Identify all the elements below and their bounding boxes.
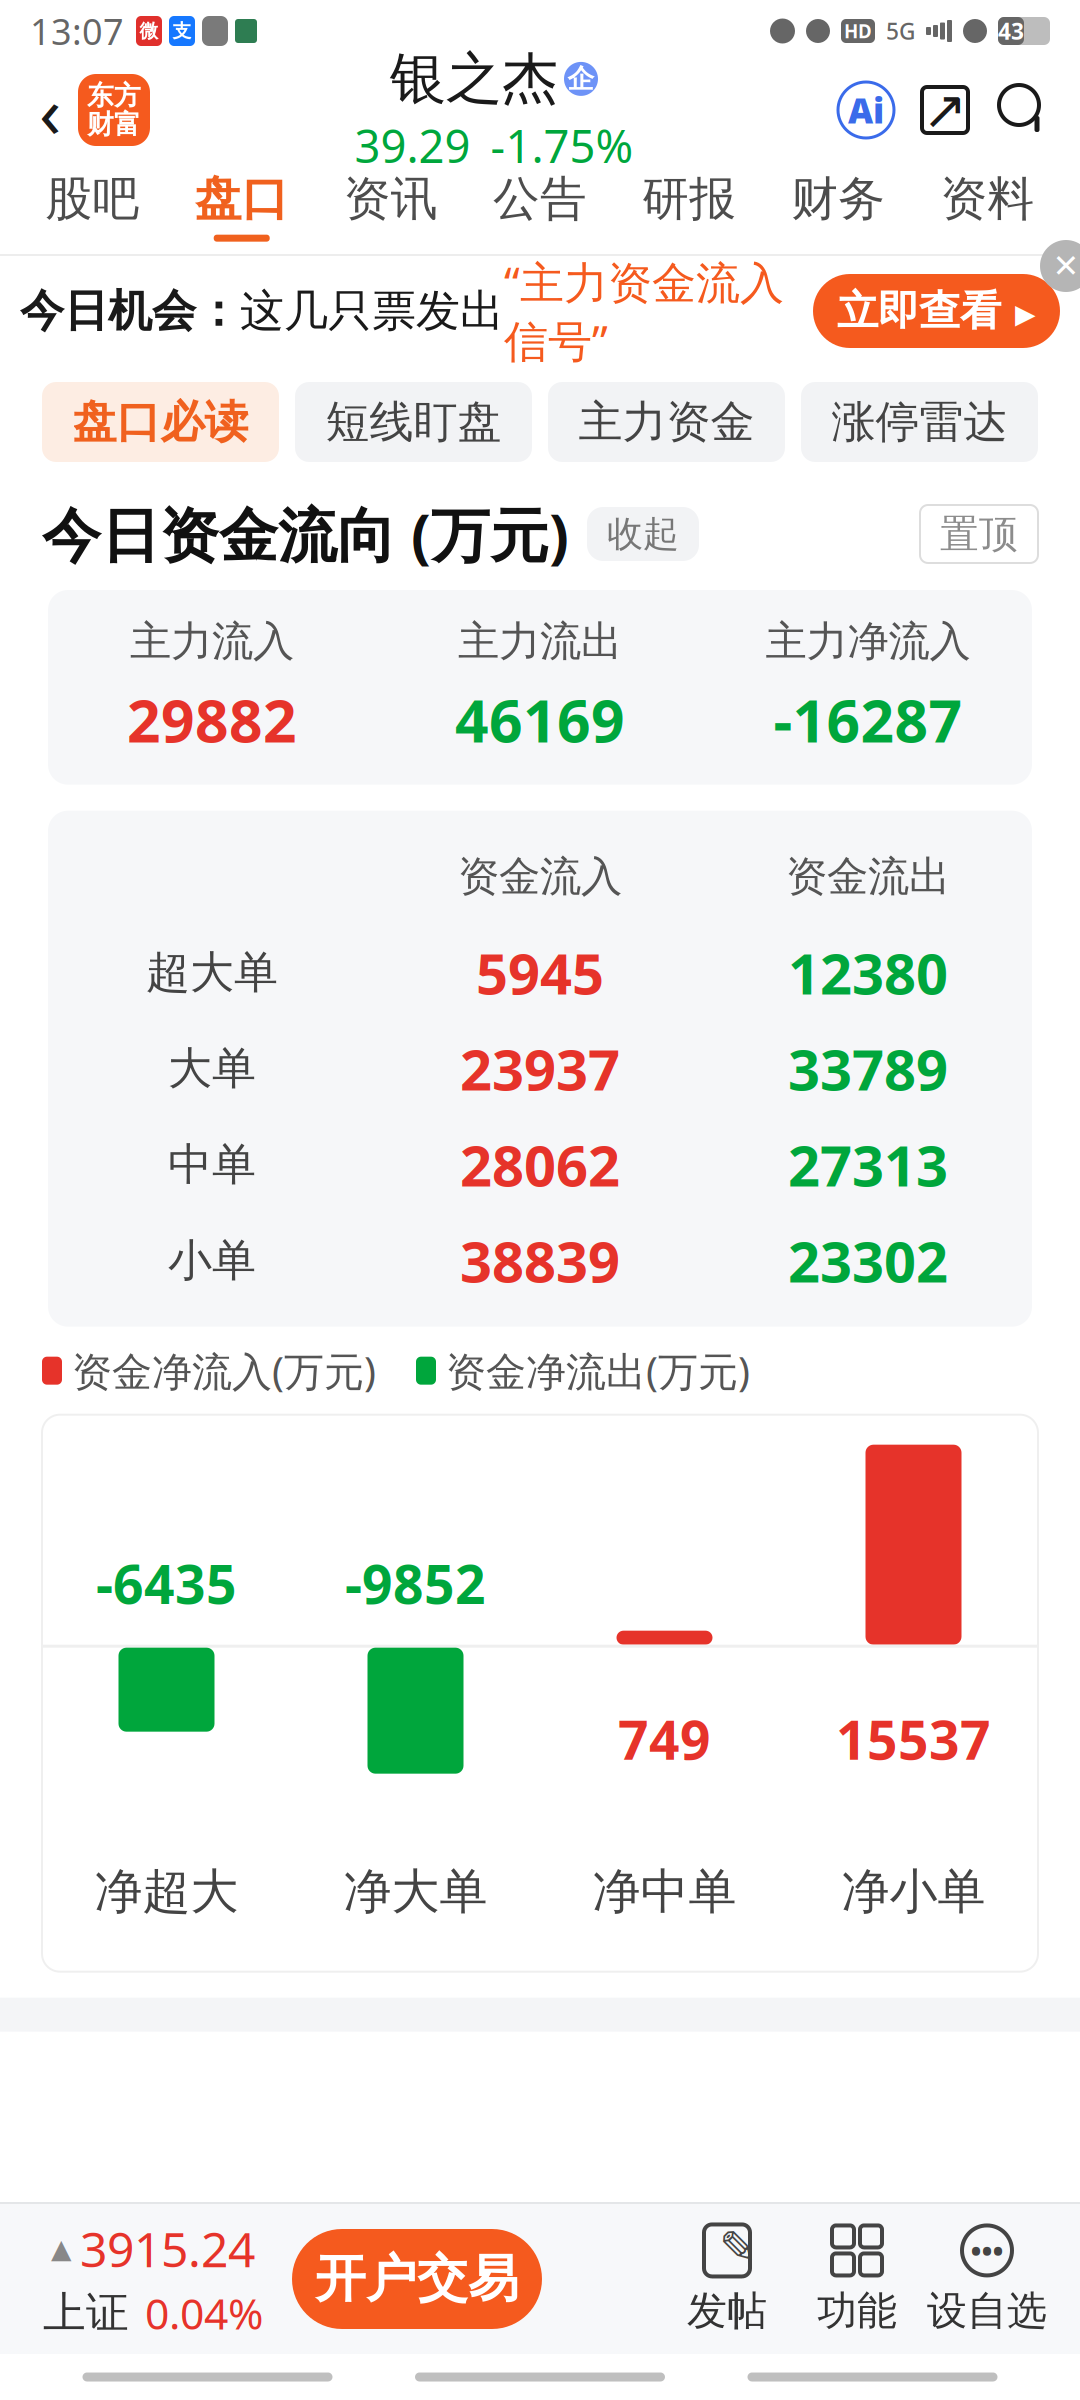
staticText: 23302 (788, 1223, 948, 1298)
staticText: 支 (172, 19, 191, 42)
button[interactable]: 主力资金 (548, 382, 785, 462)
staticText: 功能 (817, 2286, 897, 2335)
button[interactable]: 资料 (913, 161, 1062, 251)
staticText: 46169 (455, 681, 625, 759)
staticText: 资讯 (344, 170, 438, 228)
staticText: 这几只票发出 (240, 284, 504, 338)
staticText: 大单 (168, 1042, 256, 1096)
staticText: 研报 (642, 170, 736, 228)
staticText: 今日机会： (20, 284, 240, 338)
staticText: 盘口必读 (72, 395, 248, 449)
button[interactable]: 盘口必读 (42, 382, 279, 462)
staticText: 今日资金流向 (万元) (42, 495, 569, 573)
button[interactable]: ✎ (662, 2222, 792, 2335)
staticText: 公告 (493, 170, 587, 228)
staticText: 0.04% (145, 2284, 263, 2341)
staticText: 5G (886, 16, 915, 46)
staticText: 13:07 (30, 7, 124, 55)
button[interactable]: 东方财富 (78, 74, 150, 146)
staticText: 净小单 (841, 1862, 985, 1921)
staticText: 东方 (87, 79, 141, 112)
button[interactable]: AI assistant (838, 82, 894, 138)
button[interactable]: 开户交易 (292, 2229, 542, 2329)
staticText: 净超大 (94, 1862, 238, 1921)
staticText: 主力流出 (458, 616, 622, 667)
staticText: 资金净流入(万元) (72, 1344, 376, 1397)
button[interactable]: 置顶 (920, 505, 1038, 563)
staticText: 银之杰 (390, 44, 558, 113)
button[interactable]: 财务 (764, 161, 913, 251)
staticText: -9852 (345, 1548, 486, 1619)
staticText: 27313 (788, 1127, 948, 1202)
button[interactable]: Share (922, 87, 968, 133)
staticText: 43 (998, 16, 1024, 46)
staticText: ▲ (51, 2233, 72, 2264)
button[interactable]: Close banner (1040, 240, 1080, 292)
staticText: 29882 (127, 681, 297, 759)
button[interactable]: 资讯 (316, 161, 465, 251)
staticText: -16287 (773, 681, 962, 759)
staticText: ✎ (719, 2222, 757, 2273)
staticText: 资金净流出(万元) (446, 1344, 750, 1397)
staticText: 置顶 (940, 510, 1018, 558)
button[interactable]: 功能 (792, 2222, 922, 2335)
staticText: 财务 (791, 170, 885, 228)
staticText: 微 (139, 19, 158, 42)
button[interactable]: 研报 (615, 161, 764, 251)
staticText: 资料 (940, 170, 1034, 228)
staticText: 立即查看 ▸ (837, 286, 1036, 336)
staticText: ••• (970, 2231, 1003, 2270)
button[interactable]: Back (22, 70, 78, 150)
staticText: 23937 (460, 1031, 620, 1106)
staticText: 12380 (788, 935, 948, 1010)
staticText: 财富 (87, 108, 141, 141)
staticText: 资金流入 (458, 851, 622, 902)
staticText: “主力资金流入信号” (504, 253, 784, 369)
button[interactable]: 股吧 (18, 161, 167, 251)
staticText: 小单 (168, 1234, 256, 1288)
staticText: 主力资金 (578, 395, 754, 449)
staticText: 33789 (788, 1031, 948, 1106)
button[interactable]: 盘口 (167, 161, 316, 251)
staticText: 盘口 (195, 170, 289, 228)
staticText: 3915.24 (80, 2217, 255, 2280)
staticText: 资金流出 (786, 851, 950, 902)
button[interactable]: ▲ (28, 2217, 278, 2341)
staticText: 中单 (168, 1138, 256, 1192)
button[interactable]: 公告 (465, 161, 614, 251)
staticText: 38839 (460, 1223, 620, 1298)
button[interactable]: 涨停雷达 (801, 382, 1038, 462)
staticText: 净中单 (592, 1862, 736, 1921)
staticText: 主力流入 (130, 616, 294, 667)
button[interactable]: ••• (922, 2222, 1052, 2335)
staticText: 企 (567, 62, 594, 95)
staticText: 股吧 (46, 170, 140, 228)
staticText: 主力净流入 (765, 616, 970, 667)
staticText: -6435 (96, 1548, 237, 1619)
button[interactable]: Search (996, 82, 1052, 138)
staticText: 超大单 (146, 946, 278, 1000)
button[interactable]: 短线盯盘 (295, 382, 532, 462)
button[interactable]: 今日机会： (0, 256, 1080, 366)
staticText: HD (844, 19, 872, 43)
staticText: ✕ (1052, 248, 1079, 284)
staticText: 39.29 (354, 115, 470, 175)
staticText: ‹ (39, 62, 61, 158)
button[interactable]: 收起 (587, 507, 699, 561)
staticText: Ai (848, 87, 884, 133)
staticText: ↗ (922, 80, 967, 140)
staticText: 涨停雷达 (831, 395, 1007, 449)
staticText: 15537 (836, 1704, 991, 1774)
staticText: 短线盯盘 (325, 395, 501, 449)
staticText: 设自选 (927, 2286, 1047, 2335)
staticText: 28062 (460, 1127, 620, 1202)
staticText: 净大单 (343, 1862, 487, 1921)
staticText: 开户交易 (315, 2248, 519, 2310)
staticText: 5945 (476, 935, 604, 1010)
staticText: -1.75% (490, 115, 633, 175)
staticText: 上证 (43, 2287, 129, 2339)
staticText: 发帖 (687, 2286, 767, 2335)
staticText: 收起 (607, 512, 679, 556)
staticText: 749 (618, 1704, 711, 1774)
